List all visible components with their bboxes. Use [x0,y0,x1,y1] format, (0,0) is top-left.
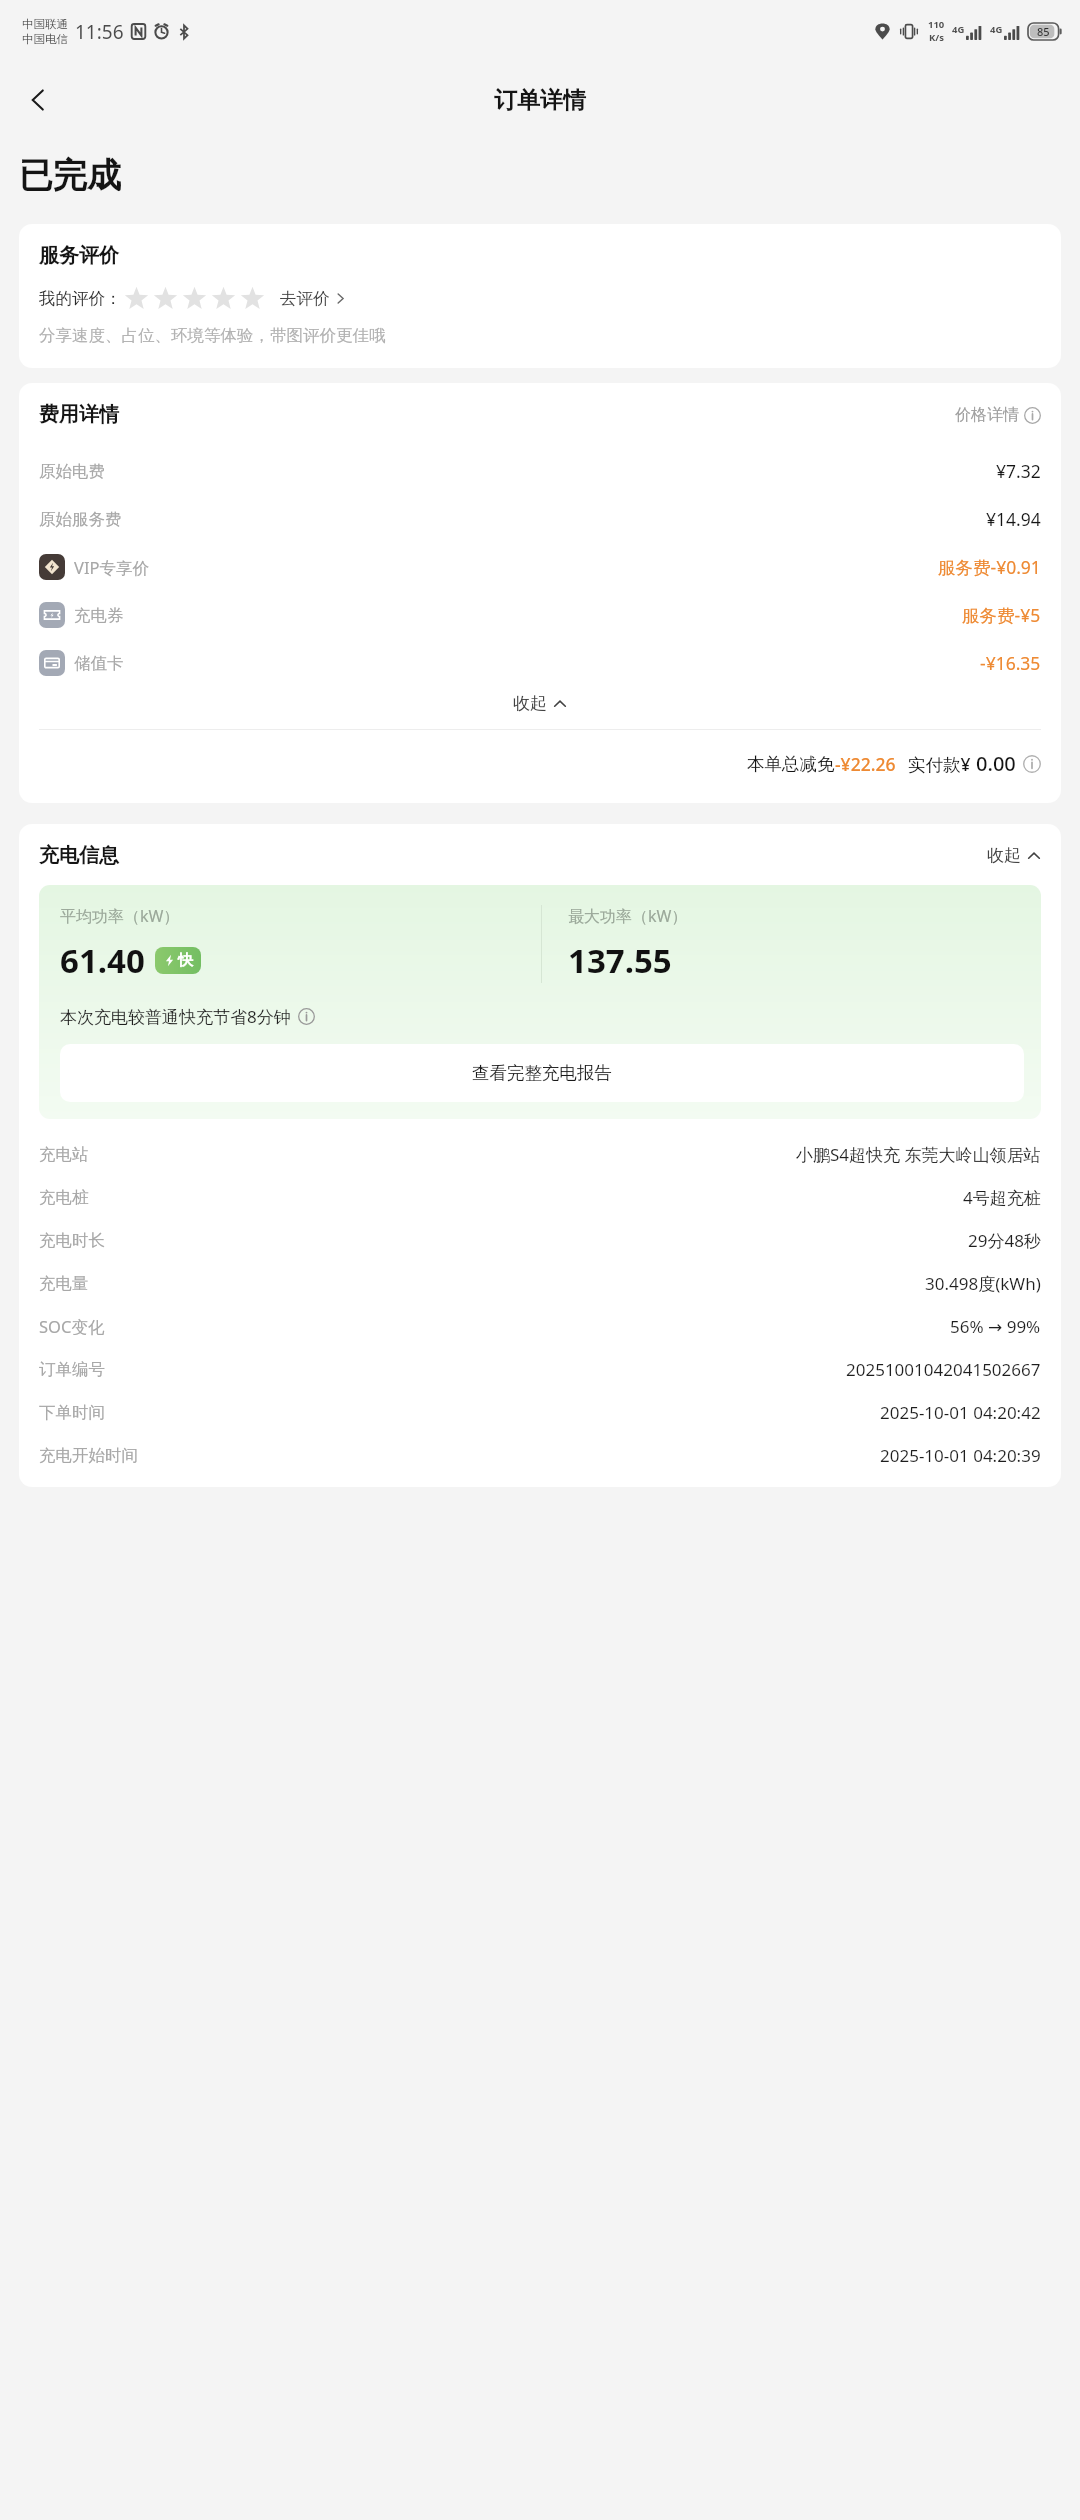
staticText: 收起 [987,845,1021,866]
staticText: 服务费-¥5 [962,603,1041,627]
staticText: 110 [928,18,945,31]
staticText: SOC变化 [39,1315,105,1338]
button[interactable]: 收起 [987,845,1041,866]
staticText: 充电量 [39,1273,89,1294]
staticText: 查看完整充电报告 [472,1062,612,1084]
staticText: 订单详情 [494,86,586,115]
staticText: 服务费-¥0.91 [938,555,1041,579]
button[interactable]: 收起 [39,693,1041,714]
staticText: 充电信息 [39,843,119,868]
staticText: 去评价 [280,288,330,309]
staticText: 原始电费 [39,461,105,482]
staticText: 充电开始时间 [39,1445,138,1466]
staticText: VIP专享价 [74,556,149,579]
staticText: 20251001042041502667 [846,1358,1041,1381]
staticText: 充电站 [39,1144,89,1165]
staticText: -¥22.26 [835,752,896,776]
staticText: 订单编号 [39,1359,105,1380]
button[interactable]: Back [10,72,66,128]
staticText: 61.40 [60,938,145,983]
staticText: -¥16.35 [980,651,1041,675]
staticText: 本次充电较普通快充节省8分钟 [60,1005,291,1028]
staticText: ¥7.32 [996,459,1041,483]
staticText: 85 [1037,24,1050,39]
staticText: 快 [178,951,193,970]
staticText: 实付款¥ [908,752,976,776]
staticText: 原始服务费 [39,509,122,530]
staticText: K/s [929,31,945,44]
staticText: 0.00 [976,750,1016,777]
staticText: 充电券 [74,605,124,626]
staticText: 4G [990,23,1003,36]
button[interactable]: 价格详情 [955,405,1041,425]
staticText: 最大功率（kW） [568,905,688,927]
staticText: 30.498度(kWh) [925,1272,1041,1295]
staticText: 储值卡 [74,653,124,674]
staticText: 已完成 [19,154,121,197]
staticText: 小鹏S4超快充 东莞大岭山领居站 [796,1143,1041,1166]
staticText: 2025-10-01 04:20:42 [880,1401,1041,1424]
staticText: 我的评价： [39,288,122,309]
staticText: 充电时长 [39,1230,105,1251]
staticText: 4号超充桩 [963,1186,1041,1209]
staticText: 下单时间 [39,1402,105,1423]
staticText: 11:56 [75,19,124,45]
staticText: 中国联通 [22,17,68,31]
staticText: 平均功率（kW） [60,905,180,927]
button[interactable]: 查看完整充电报告 [60,1044,1024,1102]
staticText: 费用详情 [39,402,119,427]
staticText: 本单总减免 [747,753,835,775]
staticText: 4G [952,23,965,36]
staticText: 分享速度、占位、环境等体验，带图评价更佳哦 [39,325,386,346]
staticText: 137.55 [568,938,672,983]
staticText: 充电桩 [39,1187,89,1208]
staticText: 56% → 99% [950,1315,1041,1338]
staticText: 价格详情 [955,405,1019,425]
staticText: 收起 [513,693,547,714]
staticText: 2025-10-01 04:20:39 [880,1444,1041,1467]
button[interactable]: 我的评价： [39,286,1041,311]
staticText: 中国电信 [22,32,68,46]
staticText: 29分48秒 [968,1229,1041,1252]
staticText: 服务评价 [39,243,119,268]
staticText: ¥14.94 [986,507,1041,531]
